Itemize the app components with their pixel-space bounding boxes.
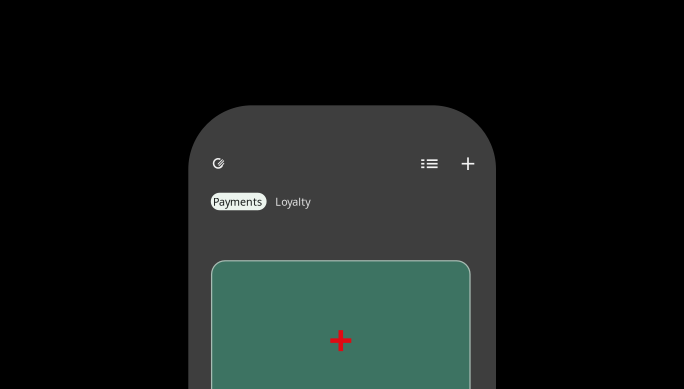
staticText: Loyalty bbox=[275, 194, 310, 209]
staticText: Payments bbox=[213, 194, 262, 209]
button[interactable]: Add a card bbox=[212, 261, 470, 389]
button[interactable]: Transactions bbox=[414, 149, 444, 179]
button[interactable]: Loyalty bbox=[273, 191, 313, 212]
button[interactable]: Add bbox=[453, 149, 483, 179]
button[interactable]: Payments bbox=[211, 193, 267, 210]
button[interactable]: Home bbox=[204, 148, 234, 178]
